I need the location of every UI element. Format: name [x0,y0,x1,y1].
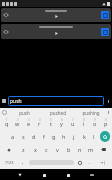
staticText: i [83,120,85,127]
staticText: ?123 [5,160,14,165]
button[interactable]: Backspace [97,144,110,155]
button[interactable]: k [79,131,89,142]
staticText: k [83,133,86,140]
button[interactable]: Back [16,171,24,179]
button[interactable]: More options [106,97,110,105]
staticText: 9 [94,118,96,122]
staticText: z [22,146,25,153]
button[interactable]: g [49,131,59,142]
button[interactable]: 9 [89,118,100,129]
staticText: a [11,133,15,140]
staticText: y [60,120,63,127]
button[interactable]: pushing [74,108,107,117]
button[interactable]: Cast [3,29,9,35]
button[interactable]: pushed [41,108,74,117]
button[interactable]: d [29,131,39,142]
staticText: p [104,120,108,127]
staticText: o [93,120,97,127]
button[interactable]: v [52,144,63,155]
button[interactable]: x [29,144,41,155]
staticText: 8 [83,118,85,122]
staticText: 6 [61,118,63,122]
button[interactable]: More suggestions [107,109,110,116]
button[interactable]: Cast [3,12,9,18]
button[interactable]: , [18,156,28,169]
button[interactable]: Home [40,171,48,179]
button[interactable]: j [69,131,79,142]
button[interactable]: Google [2,110,7,115]
button[interactable]: Cast [1,8,111,22]
staticText: 5 [50,118,52,122]
button[interactable]: 2 [12,118,23,129]
staticText: x [34,146,37,153]
button[interactable]: ?123 [1,156,18,169]
button[interactable]: Next [95,156,111,169]
button[interactable]: Play [53,13,60,20]
staticText: e [27,120,31,127]
staticText: push [19,110,30,116]
button[interactable]: c [41,144,52,155]
staticText: s [22,133,25,140]
staticText: 7 [72,118,74,122]
button[interactable]: Open app [101,28,109,36]
button[interactable]: s [18,131,29,142]
button[interactable]: Cast [1,24,111,39]
staticText: pushed [50,110,66,116]
button[interactable]: m [85,144,96,155]
button[interactable]: 1 [1,118,12,129]
staticText: h [62,133,66,140]
staticText: t [50,120,52,127]
staticText: , [22,159,24,166]
button[interactable]: 8 [78,118,89,129]
staticText: u [71,120,75,127]
button[interactable]: f [39,131,49,142]
staticText: 0 [105,118,107,122]
button[interactable]: Recents [64,171,72,179]
staticText: pushing [82,110,100,116]
staticText: r [38,120,41,127]
button[interactable]: 3 [23,118,34,129]
button[interactable]: Emoji [75,156,85,169]
staticText: d [32,133,36,140]
button[interactable]: Menu [2,99,6,103]
button[interactable]: a [7,131,18,142]
button[interactable]: push [8,96,104,106]
staticText: . [89,159,91,166]
button[interactable]: Play [53,30,60,37]
button[interactable]: h [59,131,69,142]
staticText: 1 [6,118,8,122]
button[interactable]: n [74,144,85,155]
button[interactable]: z [17,144,29,155]
button[interactable]: . [85,156,95,169]
button[interactable]: 0 [100,118,111,129]
button[interactable]: 7 [67,118,78,129]
staticText: push [10,98,22,105]
staticText: 3 [28,118,30,122]
button[interactable]: Keyboard [88,171,96,179]
button[interactable]: l [89,131,99,142]
button[interactable]: Open app [101,11,109,19]
button[interactable]: Shift [2,144,16,155]
staticText: n [78,146,82,153]
staticText: j [73,133,75,140]
button[interactable]: Search [100,131,110,142]
button[interactable]: 4 [34,118,45,129]
staticText: b [67,146,71,153]
staticText: 2 [17,118,19,122]
staticText: 4 [39,118,41,122]
staticText: g [52,133,56,140]
button[interactable]: push [7,108,41,117]
staticText: f [43,133,45,140]
staticText: w [15,120,20,127]
button[interactable]: b [63,144,74,155]
staticText: l [93,133,95,140]
staticText: c [45,146,48,153]
staticText: q [5,120,9,127]
staticText: m [88,146,94,153]
staticText: →| [100,160,106,165]
staticText: v [56,146,59,153]
button[interactable]: 6 [56,118,67,129]
button[interactable]: 5 [45,118,56,129]
